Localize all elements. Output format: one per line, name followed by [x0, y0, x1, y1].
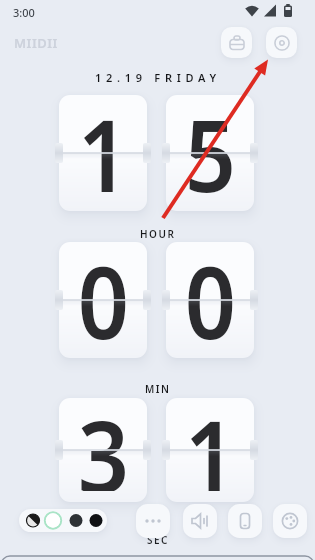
button[interactable]	[19, 509, 107, 532]
staticText: 1	[78, 95, 129, 202]
staticText: MIIDII	[14, 34, 58, 52]
staticText: 12.19 FRIDAY	[95, 70, 221, 85]
staticText: 1	[185, 398, 236, 491]
button[interactable]	[228, 504, 262, 538]
staticText: SEC	[147, 533, 169, 547]
button[interactable]: 0	[166, 242, 254, 358]
staticText: 0	[78, 242, 129, 349]
button[interactable]	[221, 27, 252, 58]
button[interactable]	[183, 504, 217, 538]
button[interactable]: 1	[59, 95, 147, 211]
staticText: 0	[185, 242, 236, 349]
button[interactable]	[273, 504, 307, 538]
button[interactable]: 3	[59, 398, 147, 502]
staticText: 3:00	[13, 5, 35, 20]
button[interactable]: 1	[166, 398, 254, 502]
staticText: HOUR	[140, 227, 176, 241]
button[interactable]: 5	[166, 95, 254, 211]
button[interactable]	[136, 504, 170, 538]
staticText: MIN	[145, 382, 171, 396]
staticText: 3	[78, 398, 129, 491]
staticText: 5	[185, 95, 236, 202]
button[interactable]: 0	[59, 242, 147, 358]
button[interactable]	[266, 27, 297, 58]
